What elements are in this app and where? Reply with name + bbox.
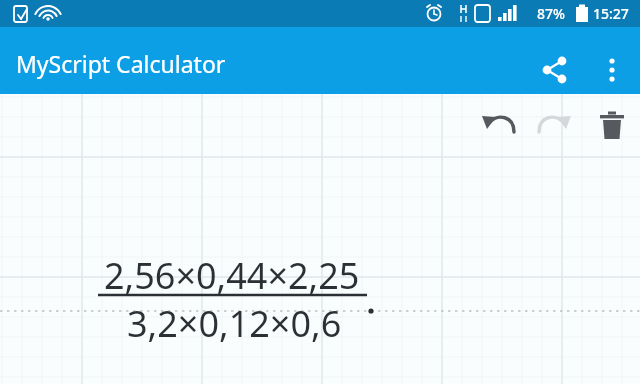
button[interactable]: Share: [529, 46, 577, 94]
staticText: 3,2×0,12×0,6: [127, 299, 342, 348]
staticText: MyScript Calculator: [16, 48, 226, 79]
button[interactable]: Undo: [476, 102, 524, 150]
button[interactable]: Redo: [529, 102, 577, 150]
button[interactable]: Delete: [588, 102, 636, 150]
staticText: 2,56×0,44×2,25: [104, 251, 360, 300]
button[interactable]: More options: [588, 46, 636, 94]
staticText: 15:27: [593, 4, 629, 23]
staticText: 87%: [537, 4, 565, 23]
